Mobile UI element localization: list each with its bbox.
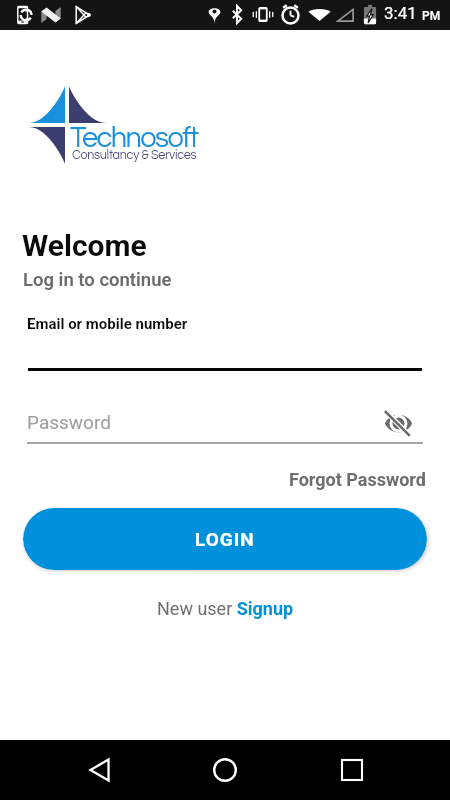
staticText: Password — [27, 411, 111, 433]
staticText: Consultancy & Services — [72, 149, 197, 162]
staticText: 3:41 — [384, 3, 417, 23]
button[interactable]: New user Signup — [157, 598, 294, 619]
staticText: PM — [422, 9, 441, 23]
staticText: Forgot Password — [289, 469, 426, 490]
staticText: Log in to continue — [23, 269, 172, 291]
button[interactable]: Forgot Password — [289, 469, 426, 490]
staticText: Email or mobile number — [27, 315, 188, 333]
button[interactable]: Back — [71, 742, 127, 798]
button[interactable]: Show password — [378, 405, 418, 441]
staticText: Welcome — [22, 228, 147, 263]
staticText: Technosoft — [70, 123, 198, 153]
button[interactable]: Home — [197, 742, 253, 798]
button[interactable]: LOGIN — [23, 508, 427, 570]
button[interactable]: Recents — [324, 742, 380, 798]
staticText: LOGIN — [195, 528, 255, 550]
staticText: New user Signup — [157, 598, 294, 619]
